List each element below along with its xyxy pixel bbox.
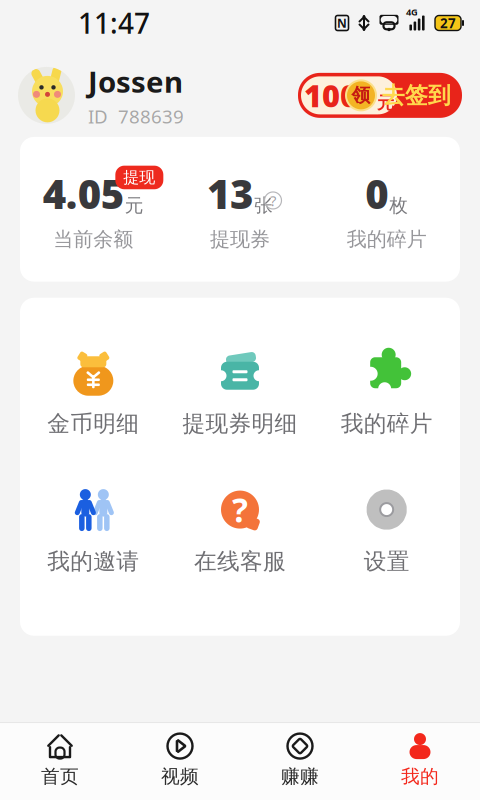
- staticText: 在线客服: [194, 548, 286, 575]
- staticText: 枚: [389, 194, 408, 217]
- button[interactable]: 提现券明细: [167, 348, 313, 437]
- staticText: 元: [377, 92, 394, 114]
- button[interactable]: 视频: [120, 732, 240, 788]
- staticText: 27: [440, 14, 456, 32]
- staticText: Jossen: [88, 62, 183, 101]
- staticText: 提现券明细: [182, 410, 297, 437]
- staticText: 我的邀请: [47, 548, 139, 575]
- staticText: 4G: [406, 6, 418, 18]
- staticText: 11:47: [78, 4, 150, 42]
- staticText: 0: [365, 167, 388, 220]
- staticText: 提现: [123, 168, 155, 187]
- staticText: 去签到: [382, 81, 451, 109]
- button[interactable]: 1000: [298, 73, 462, 118]
- button[interactable]: 赚赚: [240, 732, 360, 788]
- button[interactable]: 4.05: [20, 167, 167, 252]
- staticText: 13: [207, 167, 253, 220]
- button[interactable]: 我的碎片: [313, 348, 460, 437]
- staticText: ?: [270, 191, 276, 210]
- staticText: 提现券: [210, 227, 270, 252]
- staticText: 领: [351, 84, 370, 107]
- button[interactable]: 首页: [0, 732, 120, 788]
- button[interactable]: 设置: [313, 486, 460, 575]
- staticText: ?: [232, 487, 248, 532]
- staticText: 设置: [364, 548, 410, 575]
- staticText: 我的: [401, 765, 439, 788]
- staticText: 金币明细: [47, 410, 139, 437]
- button[interactable]: Jossen: [18, 62, 184, 129]
- button[interactable]: ?: [167, 486, 313, 575]
- staticText: 1000: [304, 75, 376, 116]
- staticText: 视频: [161, 765, 199, 788]
- button[interactable]: 0: [313, 167, 460, 252]
- staticText: 当前余额: [53, 227, 133, 252]
- staticText: ID 788639: [88, 104, 184, 129]
- button[interactable]: 我的: [360, 732, 480, 788]
- staticText: 4.05: [43, 167, 124, 220]
- button[interactable]: 我的邀请: [20, 486, 167, 575]
- staticText: 元: [125, 194, 144, 217]
- staticText: N: [337, 15, 347, 31]
- staticText: 赚赚: [281, 765, 319, 788]
- button[interactable]: 13: [167, 167, 313, 252]
- staticText: 张: [254, 194, 273, 217]
- staticText: 我的碎片: [347, 227, 427, 252]
- staticText: 我的碎片: [341, 410, 433, 437]
- staticText: 首页: [41, 765, 79, 788]
- button[interactable]: 金币明细: [20, 348, 167, 437]
